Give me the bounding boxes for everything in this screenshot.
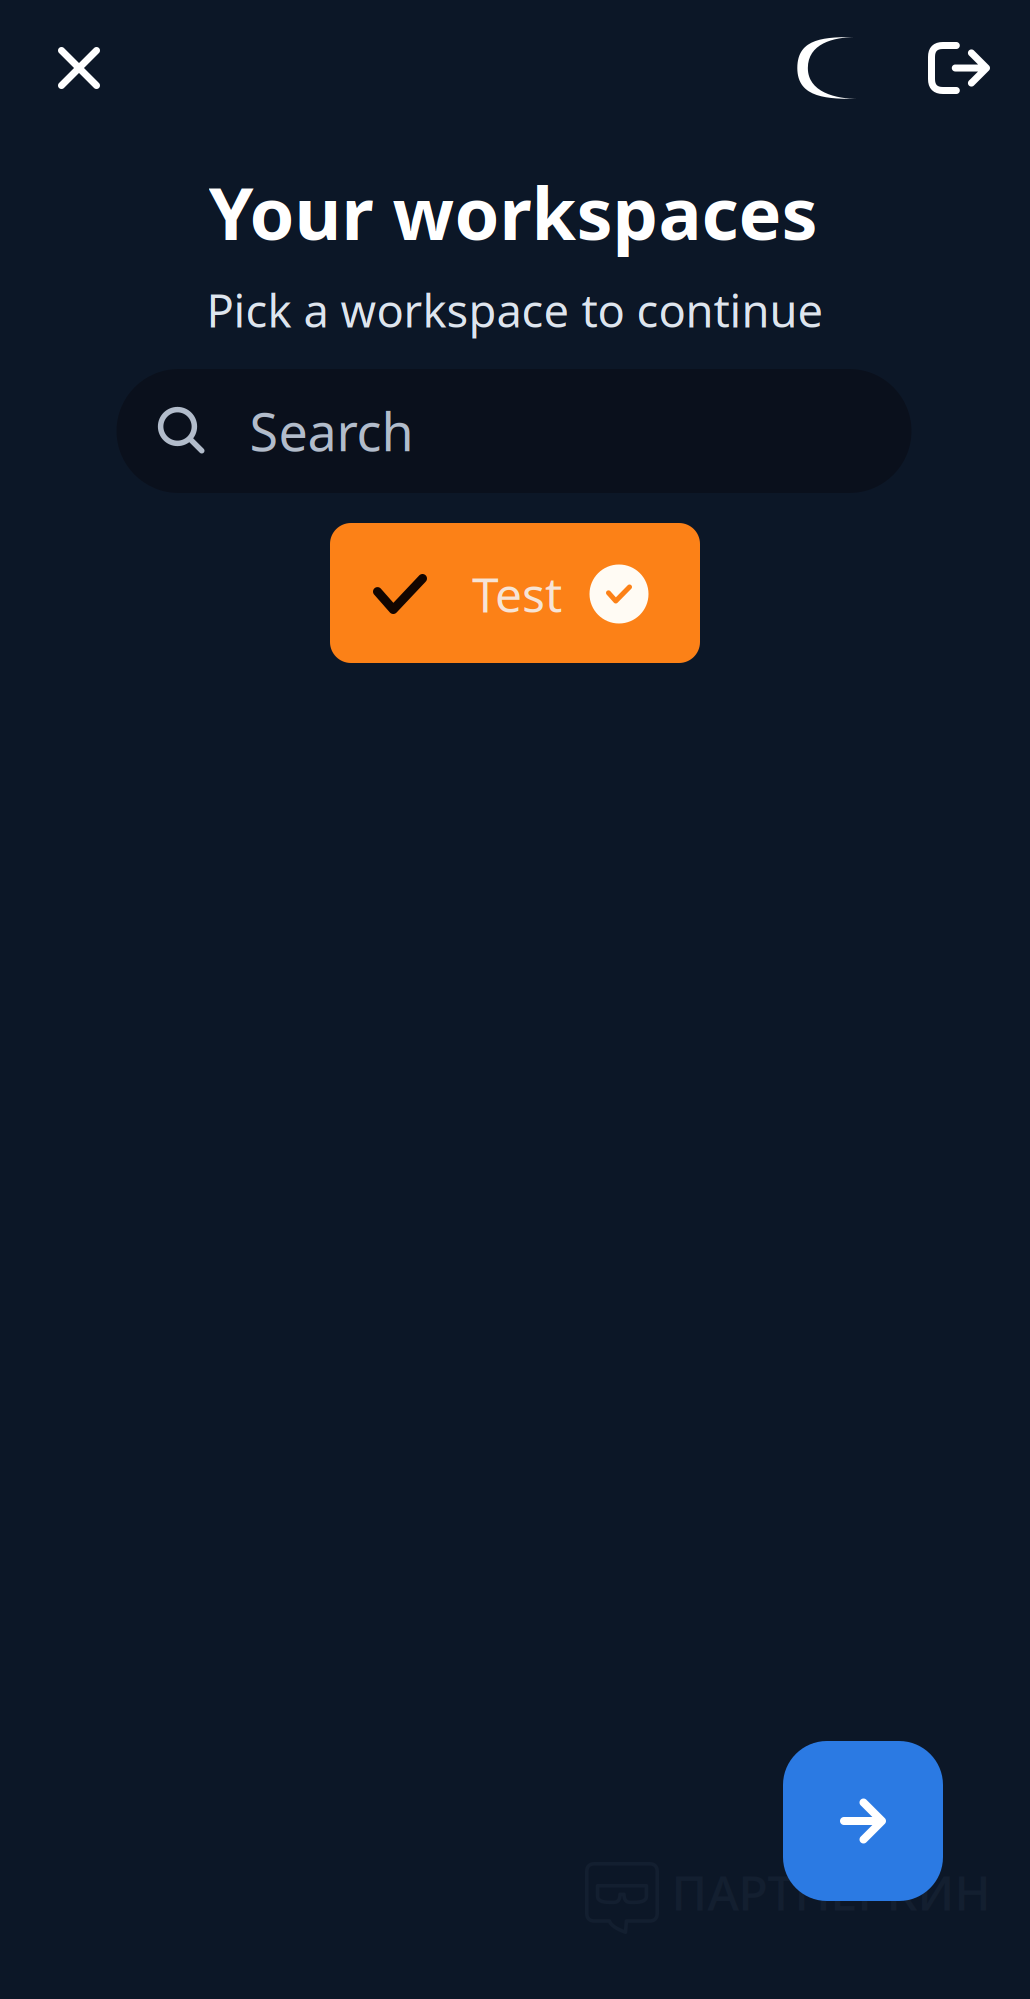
button[interactable]: Toggle dark mode [786, 26, 870, 110]
staticText: Your workspaces [208, 164, 817, 260]
button[interactable]: Log out [917, 26, 1001, 110]
button[interactable]: Close [37, 26, 121, 110]
button[interactable]: Test [330, 523, 700, 663]
staticText: Pick a workspace to continue [206, 280, 823, 340]
button[interactable]: Search workspaces [116, 369, 911, 493]
button[interactable]: Continue [783, 1741, 943, 1901]
staticText: Test [472, 562, 562, 626]
staticText: Search [249, 396, 413, 466]
staticText: ПАРТНЕРКИН [671, 1860, 990, 1924]
